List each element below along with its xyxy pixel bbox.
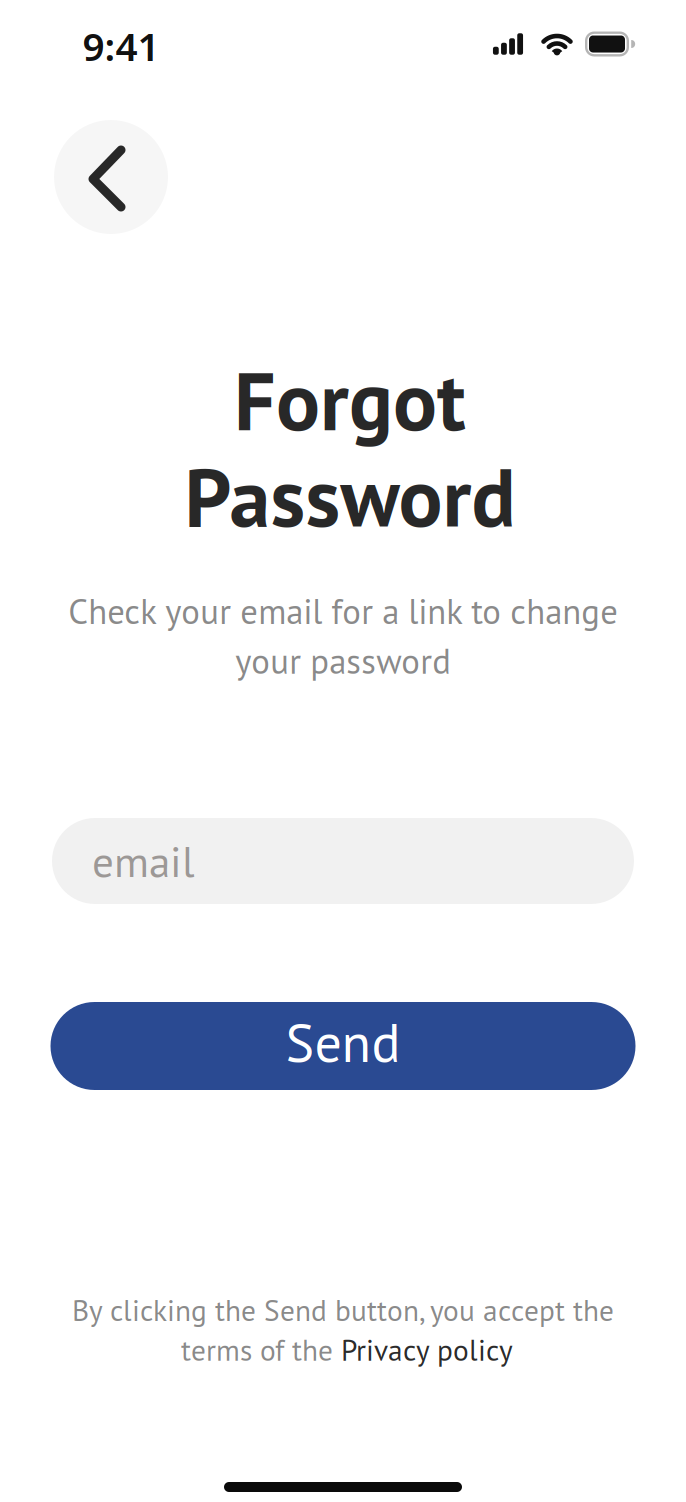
staticText: Forgot [234,347,466,453]
staticText: 9:41 [82,20,159,72]
staticText: Privacy policy [341,1331,513,1369]
staticText: Send [285,1007,400,1077]
staticText: email [92,833,195,889]
staticText: Check your email for a link to change yo… [68,589,618,683]
button[interactable]: email [52,818,634,904]
staticText: By clicking the Send button, you accept … [72,1291,614,1329]
button[interactable]: Send [50,1002,635,1090]
button[interactable]: Back [54,120,168,234]
button[interactable]: Privacy policy [341,1331,513,1369]
staticText: Password [184,443,515,549]
staticText: terms of the [181,1331,341,1369]
